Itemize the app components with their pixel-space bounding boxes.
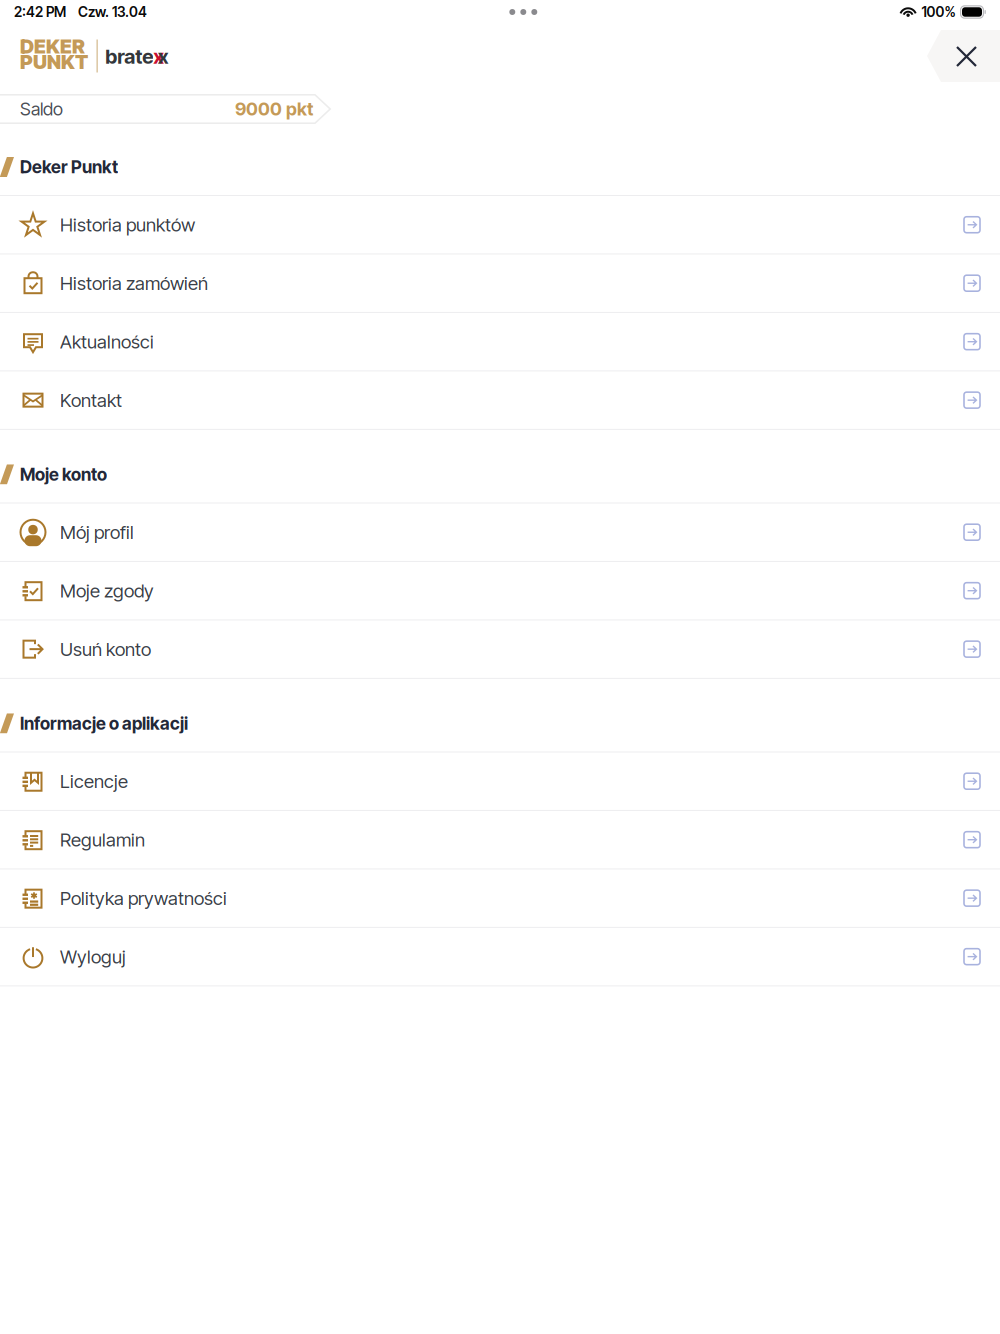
staticText: Historia punktów [60, 213, 195, 236]
button[interactable]: Polityka prywatności [0, 869, 1000, 928]
staticText: Mój profil [60, 521, 134, 543]
staticText: Polityka prywatności [60, 887, 227, 909]
staticText: Deker Punkt [20, 156, 118, 177]
button[interactable]: Wyloguj [0, 928, 1000, 986]
button[interactable]: Mój profil [0, 503, 1000, 562]
staticText: PUNKT [20, 49, 88, 74]
button[interactable]: Licencje [0, 752, 1000, 811]
button[interactable]: Usuń konto [0, 620, 1000, 679]
staticText: Moje konto [20, 464, 107, 485]
staticText: Informacje o aplikacji [20, 713, 188, 734]
staticText: 9000 pkt [235, 98, 313, 120]
staticText: Moje zgody [60, 579, 154, 602]
staticText: x [158, 44, 169, 69]
button[interactable]: Historia zamówień [0, 254, 1000, 313]
staticText: Kontakt [60, 389, 122, 411]
staticText: Usuń konto [60, 638, 151, 660]
button[interactable]: Moje zgody [0, 562, 1000, 620]
staticText: brate [105, 44, 153, 69]
staticText: Licencje [60, 770, 128, 792]
staticText: 100% [922, 3, 956, 20]
button[interactable]: Aktualności [0, 313, 1000, 371]
staticText: Regulamin [60, 828, 145, 851]
staticText: Saldo [20, 98, 63, 120]
staticText: Aktualności [60, 330, 154, 353]
button[interactable]: Regulamin [0, 811, 1000, 869]
button[interactable]: Zamknij [927, 30, 1000, 82]
staticText: Historia zamówień [60, 272, 208, 294]
staticText: Czw. 13.04 [78, 3, 147, 20]
button[interactable]: Historia punktów [0, 196, 1000, 254]
staticText: Wyloguj [60, 945, 126, 968]
staticText: 2:42 PM [14, 3, 66, 20]
staticText: DEKER [20, 34, 85, 58]
staticText: x [153, 44, 164, 69]
button[interactable]: Kontakt [0, 371, 1000, 430]
